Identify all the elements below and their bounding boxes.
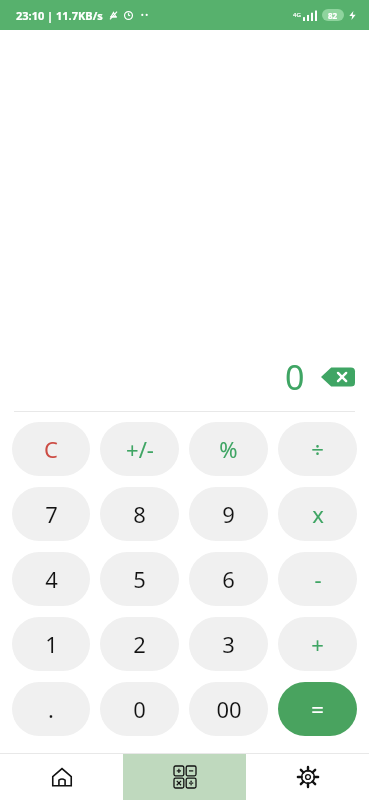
staticText: ÷ xyxy=(311,434,324,464)
button[interactable]: 6 xyxy=(189,552,268,606)
staticText: 3 xyxy=(222,629,235,659)
staticText: 6 xyxy=(222,564,235,594)
staticText: x xyxy=(312,499,324,529)
staticText: 0 xyxy=(133,694,146,724)
staticText: 0 xyxy=(285,354,305,400)
button[interactable]: Home xyxy=(0,754,123,800)
button[interactable]: ÷ xyxy=(278,422,357,476)
button[interactable]: 8 xyxy=(100,487,179,541)
staticText: 9 xyxy=(222,499,235,529)
staticText: 2 xyxy=(133,629,146,659)
button[interactable]: 00 xyxy=(189,682,268,736)
staticText: + xyxy=(311,629,324,659)
button[interactable]: = xyxy=(278,682,357,736)
button[interactable]: 0 xyxy=(100,682,179,736)
button[interactable]: 9 xyxy=(189,487,268,541)
button[interactable]: + xyxy=(278,617,357,671)
button[interactable]: Backspace xyxy=(321,365,355,389)
button[interactable]: +/- xyxy=(100,422,179,476)
staticText: = xyxy=(311,694,324,724)
staticText: +/- xyxy=(126,434,154,464)
staticText: 00 xyxy=(216,694,242,724)
button[interactable]: Calculator xyxy=(123,754,246,800)
staticText: 5 xyxy=(133,564,146,594)
button[interactable]: 5 xyxy=(100,552,179,606)
staticText: C xyxy=(44,434,58,464)
button[interactable]: 1 xyxy=(12,617,90,671)
button[interactable]: % xyxy=(189,422,268,476)
staticText: . xyxy=(48,694,54,724)
button[interactable]: 3 xyxy=(189,617,268,671)
button[interactable]: 4 xyxy=(12,552,90,606)
staticText: 23:10 | 11.7KB/s xyxy=(16,8,103,23)
staticText: 82 xyxy=(328,10,338,21)
staticText: 1 xyxy=(45,629,58,659)
button[interactable]: . xyxy=(12,682,90,736)
staticText: 4G xyxy=(293,11,301,19)
button[interactable]: Settings xyxy=(246,754,369,800)
staticText: 7 xyxy=(45,499,58,529)
staticText: - xyxy=(314,564,322,594)
staticText: 4 xyxy=(45,564,58,594)
button[interactable]: x xyxy=(278,487,357,541)
button[interactable]: 2 xyxy=(100,617,179,671)
button[interactable]: C xyxy=(12,422,90,476)
button[interactable]: - xyxy=(278,552,357,606)
button[interactable]: 7 xyxy=(12,487,90,541)
staticText: 8 xyxy=(133,499,146,529)
staticText: % xyxy=(219,434,238,464)
